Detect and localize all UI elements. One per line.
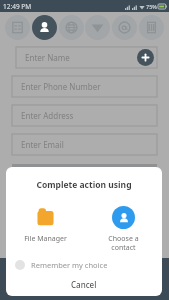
staticText: Enter Name xyxy=(25,52,70,63)
staticText: Choose a contact xyxy=(108,234,139,252)
button[interactable]: Enter Name xyxy=(16,47,157,68)
staticText: Enter Email xyxy=(21,139,64,150)
button[interactable]: Add contact xyxy=(137,49,154,66)
staticText: Cancel xyxy=(71,279,97,290)
button[interactable] xyxy=(12,164,157,186)
button[interactable]: Browser xyxy=(59,15,84,40)
button[interactable]: Enter Address xyxy=(12,105,157,126)
staticText: Complete action using xyxy=(6,179,162,191)
staticText: File Manager xyxy=(24,234,67,244)
staticText: Enter Address xyxy=(21,110,74,121)
button[interactable]: Barcode xyxy=(139,15,164,40)
button[interactable]: Cancel xyxy=(6,273,162,296)
button[interactable]: Email xyxy=(112,15,137,40)
button[interactable]: Choose a contact xyxy=(84,206,162,252)
button[interactable]: Enter Email xyxy=(12,134,157,155)
staticText: Enter Phone Number xyxy=(21,81,101,92)
button[interactable]: Wi-Fi xyxy=(85,15,110,40)
button[interactable]: Remember my choice xyxy=(15,257,153,273)
button[interactable]: Enter Phone Number xyxy=(12,76,157,97)
button[interactable]: File Manager xyxy=(6,206,84,244)
staticText: Remember my choice xyxy=(31,260,108,270)
staticText: 75% xyxy=(146,3,157,10)
button[interactable]: Notes xyxy=(5,15,30,40)
button[interactable]: Contacts xyxy=(32,15,57,40)
staticText: 12:49 PM xyxy=(3,2,32,11)
